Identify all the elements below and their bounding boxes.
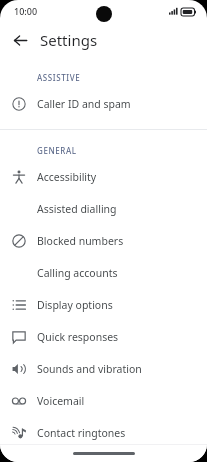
staticText: GENERAL	[37, 145, 77, 156]
button[interactable]: Back	[6, 26, 34, 54]
staticText: Settings	[40, 30, 98, 50]
button[interactable]: Accessibility	[0, 161, 207, 193]
staticText: Voicemail	[37, 394, 85, 408]
staticText: ASSISTIVE	[37, 72, 81, 83]
button[interactable]: Quick responses	[0, 321, 207, 353]
button[interactable]: Caller ID and spam	[0, 88, 207, 120]
button[interactable]: Calling accounts	[0, 257, 207, 289]
button[interactable]: Sounds and vibration	[0, 353, 207, 385]
staticText: Display options	[37, 298, 113, 312]
button[interactable]: Display options	[0, 289, 207, 321]
staticText: Assisted dialling	[37, 202, 117, 216]
staticText: Blocked numbers	[37, 234, 124, 248]
staticText: Quick responses	[37, 330, 119, 344]
button[interactable]: Voicemail	[0, 385, 207, 417]
button[interactable]: Contact ringtones	[0, 417, 207, 449]
staticText: Caller ID and spam	[37, 97, 131, 111]
staticText: 10:00	[14, 5, 38, 17]
staticText: Sounds and vibration	[37, 362, 142, 376]
button[interactable]: Blocked numbers	[0, 225, 207, 257]
staticText: Contact ringtones	[37, 426, 126, 440]
staticText: Accessibility	[37, 170, 97, 184]
staticText: Calling accounts	[37, 266, 118, 280]
button[interactable]: Assisted dialling	[0, 193, 207, 225]
